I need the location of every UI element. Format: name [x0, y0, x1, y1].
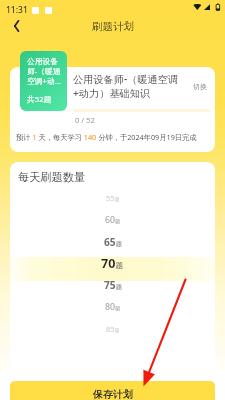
staticText: 每天刷题数量: [18, 170, 86, 184]
staticText: 85题: [106, 324, 120, 334]
button[interactable]: 公用设备师-（暖通空调 +动力）基础知识: [10, 67, 215, 152]
staticText: 公用设备师-（暖通空调 +动力）基础知识: [73, 72, 179, 100]
staticText: 55题: [106, 193, 120, 203]
button[interactable]: 75题: [10, 274, 215, 296]
button[interactable]: 65题: [10, 231, 215, 253]
button[interactable]: 公用设备 师-（暖通 空调+动...: [20, 51, 67, 111]
staticText: 公用设备 师-（暖通 空调+动...: [27, 56, 62, 86]
staticText: 刷题计划: [92, 20, 134, 33]
staticText: 80题: [105, 301, 121, 313]
staticText: 70题: [101, 255, 124, 272]
staticText: 保存计划: [93, 388, 133, 400]
staticText: 0 / 52: [75, 115, 95, 125]
staticText: 切换: [193, 82, 207, 91]
staticText: 65题: [104, 235, 122, 249]
staticText: 11:31: [6, 4, 28, 16]
staticText: 共52题: [27, 94, 52, 105]
staticText: 60题: [105, 214, 121, 226]
button[interactable]: 60题: [10, 209, 215, 231]
button[interactable]: 80题: [10, 296, 215, 318]
button[interactable]: 70题: [10, 252, 215, 274]
staticText: 预计 1 天，每天学习 140 分钟，于2024年09月19日完成: [16, 132, 197, 142]
button[interactable]: 85题: [10, 318, 215, 340]
staticText: 75题: [104, 278, 122, 292]
button[interactable]: 保存计划: [10, 381, 215, 400]
button[interactable]: Back: [4, 13, 30, 39]
